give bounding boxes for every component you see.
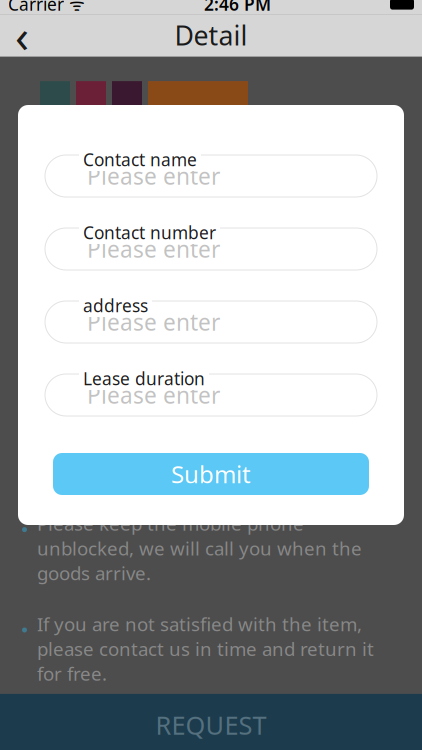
staticText: Please enter [87,307,220,337]
staticText: ᯤ [64,0,85,16]
staticText: Submit [171,458,251,490]
staticText: REQUEST [155,708,266,742]
staticText: Contact number [83,221,216,244]
staticText: ‹ [15,5,29,65]
staticText: Lease duration [83,367,205,390]
button[interactable]: Back [0,15,44,55]
staticText: Detail [174,17,247,53]
staticText: Please enter [87,234,220,264]
staticText: Contact name [83,148,197,171]
button[interactable]: REQUEST [0,694,422,750]
staticText: If you are not satisfied with the item, … [37,611,374,686]
staticText: Please enter [87,161,220,191]
button[interactable]: Submit [53,453,369,495]
staticText: Carrier [8,0,64,16]
staticText: Please enter [87,380,220,410]
staticText: 2:46 PM [204,0,271,16]
staticText: address [83,294,148,317]
staticText: Please keep the mobile phone unblocked, … [37,511,362,585]
